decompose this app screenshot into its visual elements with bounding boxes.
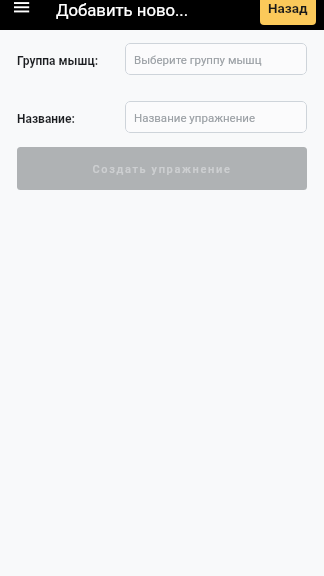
staticText: Группа мышц: — [17, 54, 99, 68]
button[interactable]: Создать упражнение — [17, 147, 307, 190]
staticText: Создать упражнение — [92, 163, 232, 176]
button[interactable]: Open navigation menu — [0, 0, 44, 30]
staticText: Название: — [17, 112, 75, 126]
staticText: Добавить ново... — [56, 1, 189, 21]
button[interactable]: Название упражнение — [125, 101, 307, 133]
staticText: Назад — [268, 0, 308, 16]
button[interactable]: Выберите группу мышц — [125, 43, 307, 75]
button[interactable]: Назад — [260, 0, 316, 25]
staticText: Выберите группу мышц — [134, 53, 262, 66]
staticText: Название упражнение — [134, 111, 256, 124]
